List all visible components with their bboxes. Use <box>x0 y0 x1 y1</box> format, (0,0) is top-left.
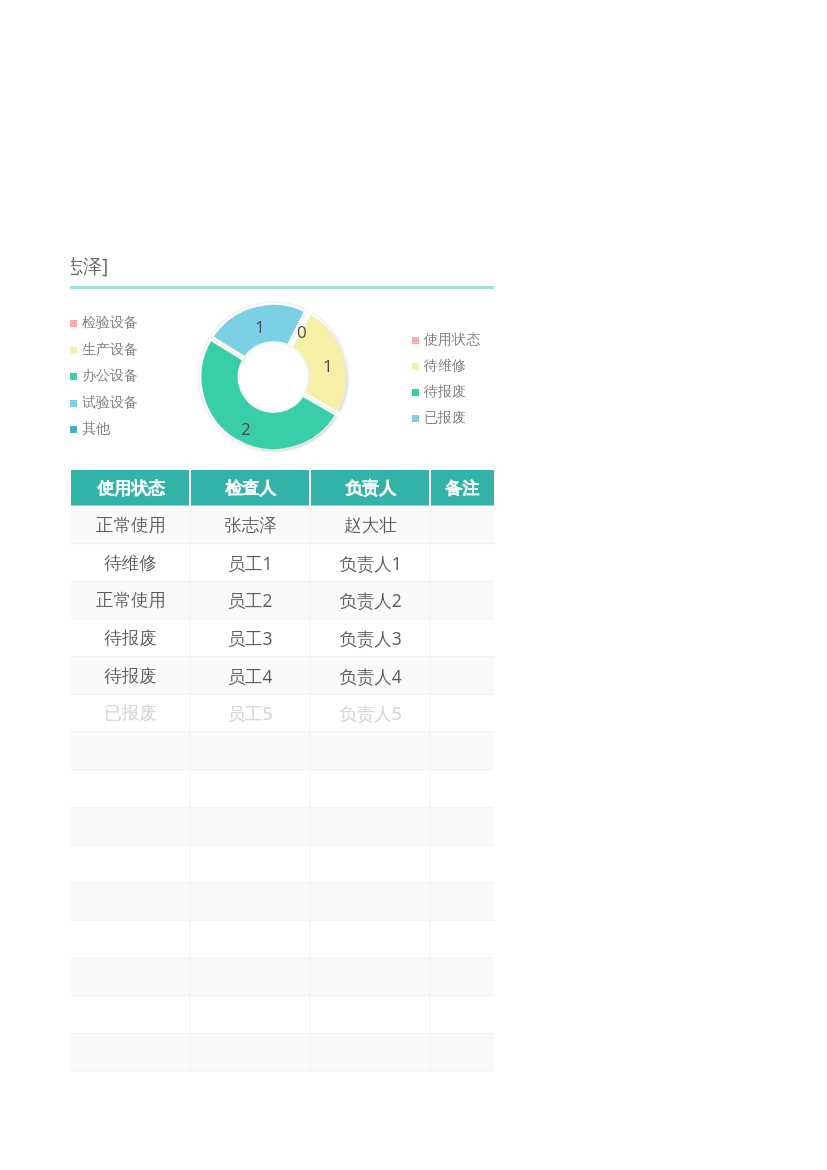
staticText: 赵大壮 <box>344 514 397 536</box>
staticText: 1 <box>323 354 333 376</box>
button[interactable]: 负责人 <box>310 470 430 506</box>
staticText: 志泽] <box>71 253 109 279</box>
button[interactable]: 其他 <box>70 418 110 440</box>
staticText: 负责人4 <box>339 664 402 688</box>
button[interactable]: 员工3 <box>190 619 310 657</box>
staticText: 负责人 <box>345 478 396 499</box>
staticText: 员工4 <box>227 664 273 688</box>
button[interactable]: 正常使用 <box>71 506 190 544</box>
button[interactable]: 待报废 <box>412 381 466 403</box>
staticText: 待报废 <box>424 383 466 401</box>
staticText: 负责人1 <box>339 551 402 575</box>
button[interactable]: 检查人 <box>190 470 310 506</box>
button[interactable]: 负责人2 <box>310 581 430 619</box>
staticText: 负责人2 <box>339 588 402 612</box>
staticText: 1 <box>255 315 265 337</box>
button[interactable]: 试验设备 <box>70 392 138 414</box>
button[interactable]: 待报废 <box>71 657 190 695</box>
button[interactable]: 负责人5 <box>310 694 430 732</box>
button[interactable]: 备注 <box>430 470 494 506</box>
button[interactable]: 负责人4 <box>310 657 430 695</box>
button[interactable]: 生产设备 <box>70 339 138 361</box>
button[interactable]: 办公设备 <box>70 365 138 387</box>
staticText: 待报废 <box>104 665 157 687</box>
staticText: 使用状态 <box>97 478 165 499</box>
button[interactable]: 员工2 <box>190 581 310 619</box>
staticText: 已报废 <box>104 702 157 724</box>
button[interactable]: 负责人3 <box>310 619 430 657</box>
button[interactable]: 设备使用状态环形图 <box>193 296 357 460</box>
staticText: 员工2 <box>227 588 273 612</box>
button[interactable]: 正常使用 <box>71 581 190 619</box>
staticText: 检验设备 <box>82 314 138 332</box>
staticText: 正常使用 <box>96 514 166 536</box>
staticText: 已报废 <box>424 409 466 427</box>
staticText: 正常使用 <box>96 589 166 611</box>
button[interactable]: 负责人1 <box>310 544 430 582</box>
button[interactable]: 待维修 <box>412 355 466 377</box>
staticText: 员工1 <box>227 551 273 575</box>
staticText: 待报废 <box>104 627 157 649</box>
button[interactable]: 待维修 <box>71 544 190 582</box>
button[interactable]: 员工1 <box>190 544 310 582</box>
button[interactable]: 员工5 <box>190 694 310 732</box>
staticText: 负责人5 <box>339 701 402 725</box>
staticText: 备注 <box>445 478 479 499</box>
button[interactable]: 待报废 <box>71 619 190 657</box>
button[interactable]: 已报废 <box>412 407 466 429</box>
button[interactable]: 使用状态 <box>412 329 480 351</box>
staticText: 其他 <box>82 420 110 438</box>
staticText: 生产设备 <box>82 341 138 359</box>
button[interactable]: 使用状态 <box>71 470 190 506</box>
button[interactable]: 赵大壮 <box>310 506 430 544</box>
button[interactable]: 已报废 <box>71 694 190 732</box>
staticText: 办公设备 <box>82 367 138 385</box>
button[interactable]: 检验设备 <box>70 312 138 334</box>
button[interactable]: 员工4 <box>190 657 310 695</box>
staticText: 2 <box>241 417 251 439</box>
button[interactable]: 张志泽 <box>190 506 310 544</box>
